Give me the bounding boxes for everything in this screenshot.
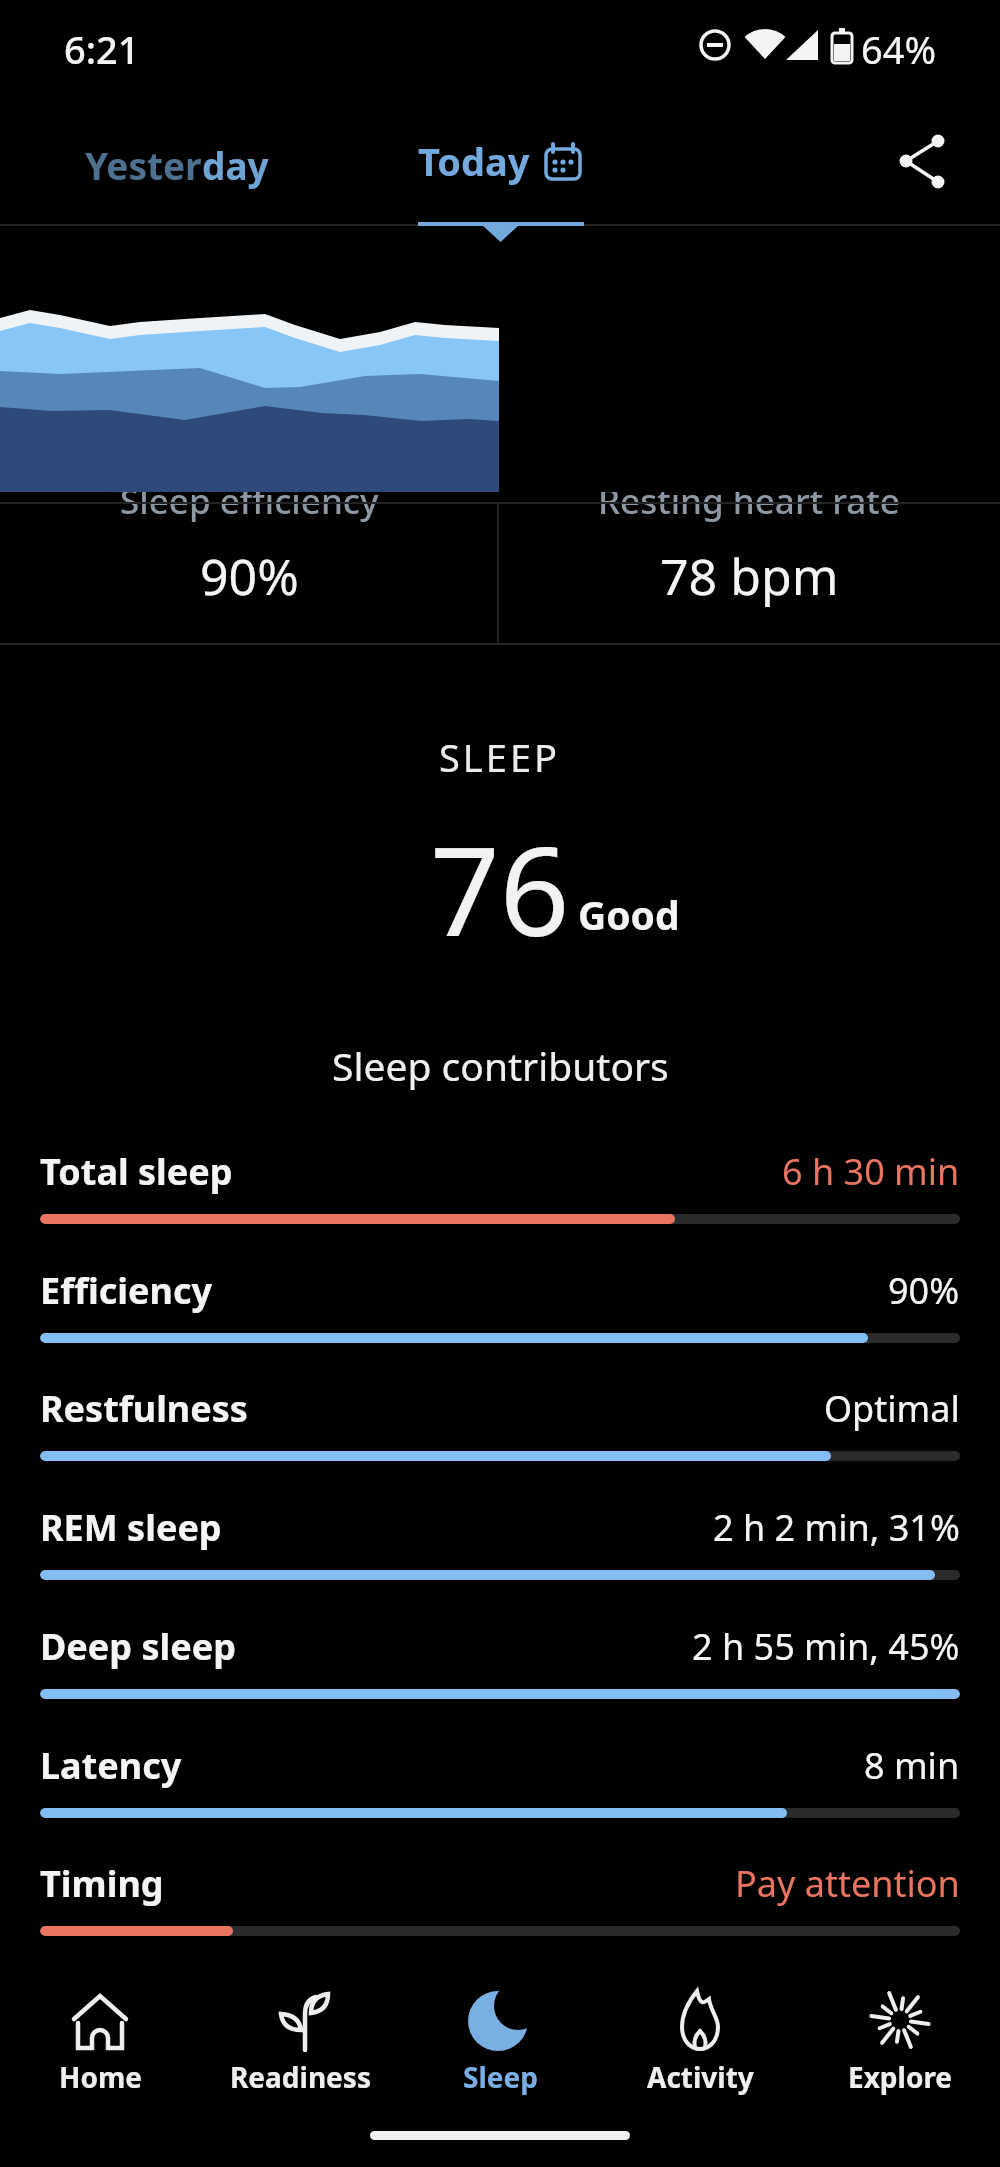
staticText: Readiness (230, 2058, 371, 2096)
staticText: Sleep (463, 2058, 538, 2096)
button[interactable]: Home (0, 1990, 200, 2096)
staticText: Good (578, 888, 680, 941)
staticText: Sleep contributors (332, 1039, 669, 1092)
staticText: Explore (848, 2058, 953, 2096)
staticText: Restfulness (40, 1384, 248, 1433)
button[interactable]: Readiness (200, 1990, 400, 2096)
staticText: Activity (647, 2058, 754, 2096)
staticText: Timing (40, 1859, 164, 1908)
staticText: Deep sleep (40, 1622, 236, 1671)
staticText: Home (59, 2058, 142, 2096)
staticText: day (202, 140, 269, 190)
staticText: Total sleep (40, 1147, 233, 1196)
staticText: Efficiency (40, 1266, 213, 1315)
button[interactable] (885, 128, 955, 198)
staticText: 2 h 55 min, 45% (692, 1622, 960, 1671)
staticText: REM sleep (40, 1503, 222, 1552)
button[interactable]: Yester (85, 140, 269, 190)
button[interactable]: Sleep (400, 1990, 600, 2096)
button[interactable]: Activity (600, 1990, 800, 2096)
staticText: 6:21 (64, 23, 140, 75)
staticText: 64% (861, 23, 937, 75)
staticText: 90% (888, 1266, 960, 1315)
staticText: 6 h 30 min (782, 1147, 960, 1196)
staticText: Sleep efficiency (120, 492, 379, 525)
staticText: Latency (40, 1741, 182, 1790)
staticText: 76 (430, 806, 570, 972)
staticText: 78 bpm (660, 542, 839, 610)
staticText: 2 h 2 min, 31% (713, 1503, 960, 1552)
staticText: 90% (200, 542, 299, 610)
staticText: Resting heart rate (598, 492, 900, 525)
staticText: Optimal (824, 1384, 960, 1433)
staticText: Pay attention (735, 1859, 960, 1908)
staticText: Today (418, 135, 530, 187)
button[interactable]: Explore (800, 1990, 1000, 2096)
button[interactable]: Today (418, 135, 582, 187)
staticText: 8 min (864, 1741, 960, 1790)
staticText: SLEEP (439, 731, 561, 783)
staticText: Yester (85, 140, 202, 190)
